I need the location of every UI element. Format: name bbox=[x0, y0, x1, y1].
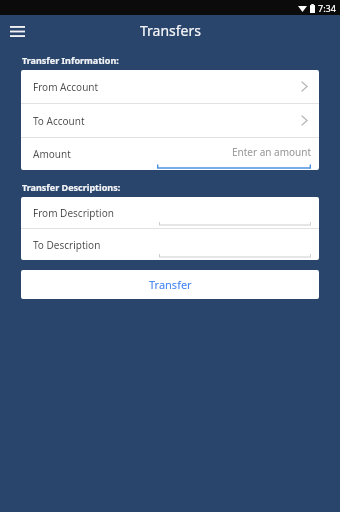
staticText: From Account bbox=[33, 80, 99, 94]
button[interactable]: From Account bbox=[21, 70, 319, 103]
staticText: Enter an amount bbox=[231, 145, 311, 159]
button[interactable]: To Account bbox=[21, 104, 319, 137]
button[interactable]: To Description bbox=[21, 229, 319, 260]
button[interactable]: Transfer bbox=[21, 270, 319, 299]
staticText: Transfer Information: bbox=[22, 54, 119, 66]
staticText: To Description bbox=[33, 238, 101, 252]
staticText: Transfer bbox=[149, 277, 192, 292]
button[interactable]: Amount bbox=[21, 138, 319, 170]
staticText: 7:34 bbox=[318, 2, 336, 14]
button[interactable]: From Description bbox=[21, 197, 319, 228]
staticText: To Account bbox=[33, 114, 85, 128]
button[interactable]: Open navigation menu bbox=[4, 18, 30, 44]
staticText: Transfers bbox=[140, 21, 201, 40]
staticText: Transfer Descriptions: bbox=[22, 181, 121, 193]
staticText: From Description bbox=[33, 206, 114, 220]
staticText: Amount bbox=[33, 147, 71, 161]
